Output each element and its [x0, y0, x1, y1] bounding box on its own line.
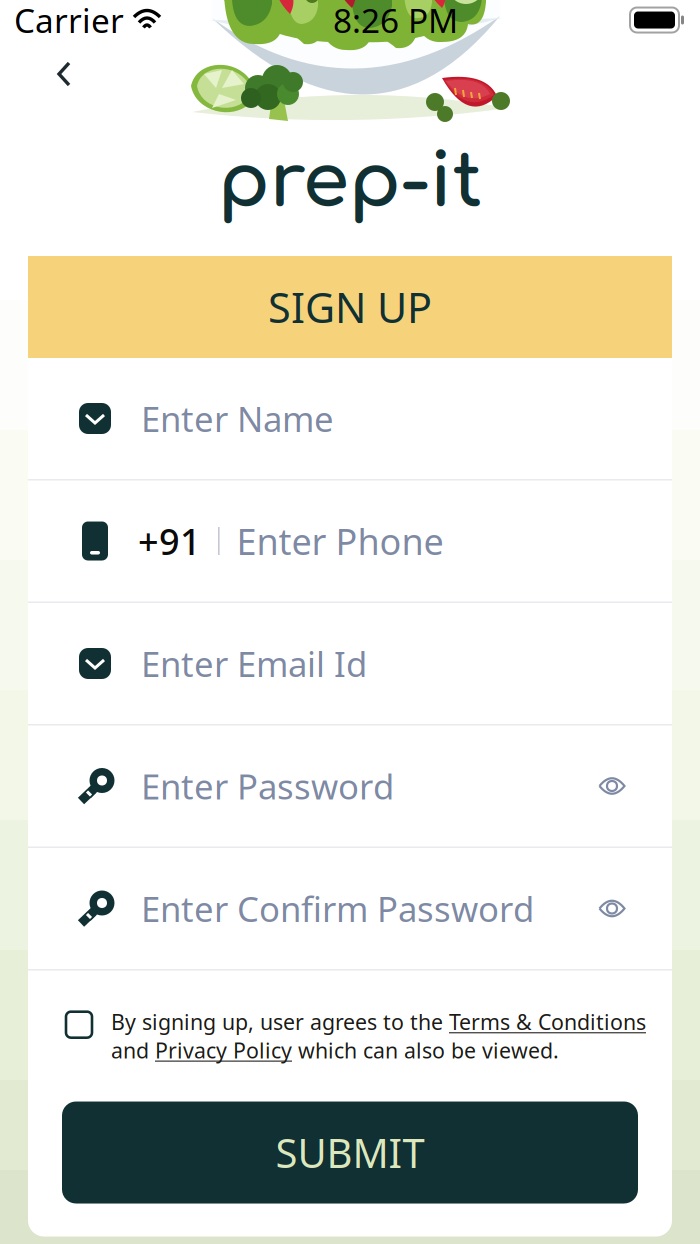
staticText: SIGN UP [268, 280, 432, 334]
staticText: Enter Confirm Password [141, 885, 534, 931]
button[interactable]: Enter Name [28, 358, 672, 479]
button[interactable]: SUBMIT [62, 1101, 638, 1203]
button[interactable]: Agree to terms and conditions [66, 1012, 92, 1038]
staticText: Enter Name [141, 395, 334, 441]
button[interactable]: +91 [28, 480, 672, 601]
staticText: and Privacy Policy which can also be vie… [111, 1036, 559, 1064]
staticText: 8:26 PM [333, 0, 458, 42]
button[interactable]: SIGN UP [28, 256, 672, 358]
staticText: Carrier [14, 0, 124, 42]
staticText: prep-it [217, 140, 482, 224]
staticText: SUBMIT [275, 1126, 424, 1179]
button[interactable]: Back [40, 49, 88, 99]
staticText: +91 [138, 517, 201, 565]
button[interactable]: Enter Password [28, 725, 672, 846]
button[interactable]: Enter Confirm Password [28, 848, 672, 969]
button[interactable]: Enter Email Id [28, 603, 672, 724]
staticText: Enter Password [141, 763, 394, 809]
staticText: By signing up, user agrees to the Terms … [111, 1008, 646, 1036]
staticText: Enter Phone [237, 517, 444, 565]
staticText: Enter Email Id [141, 640, 367, 686]
